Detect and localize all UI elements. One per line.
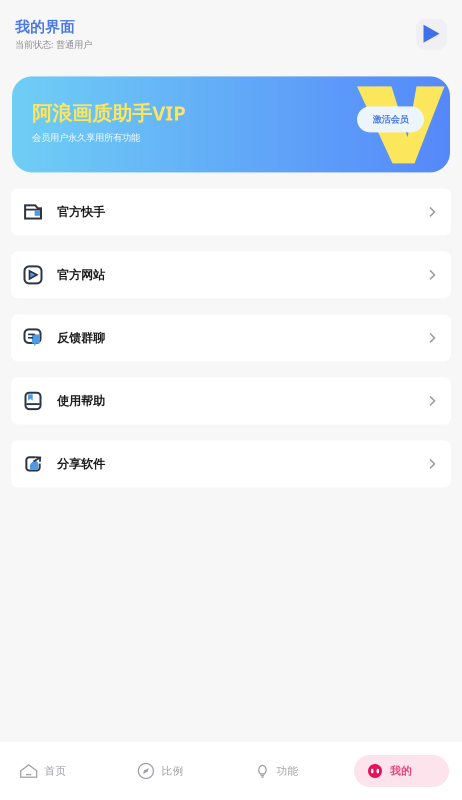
staticText: 阿浪画质助手VIP: [32, 99, 185, 126]
staticText: 反馈群聊: [57, 330, 105, 345]
staticText: 激活会员: [372, 114, 408, 125]
button[interactable]: 比例: [138, 742, 183, 800]
staticText: 分享软件: [57, 456, 105, 471]
staticText: 官方网站: [57, 267, 105, 282]
button[interactable]: 官方快手: [11, 188, 451, 235]
button[interactable]: 反馈群聊: [11, 314, 451, 361]
staticText: 当前状态: 普通用户: [15, 38, 92, 50]
button[interactable]: 分享软件: [11, 440, 451, 487]
button[interactable]: Send: [416, 19, 447, 50]
button[interactable]: 我的: [354, 755, 449, 787]
button[interactable]: 官方网站: [11, 251, 451, 298]
staticText: 首页: [44, 764, 66, 777]
button[interactable]: 首页: [20, 742, 66, 800]
staticText: 我的: [390, 764, 412, 777]
button[interactable]: 使用帮助: [11, 377, 451, 424]
button[interactable]: 功能: [256, 742, 298, 800]
staticText: 我的界面: [15, 18, 75, 36]
staticText: 比例: [161, 764, 183, 777]
staticText: 使用帮助: [57, 393, 105, 408]
staticText: 会员用户永久享用所有功能: [32, 132, 140, 143]
button[interactable]: 激活会员: [357, 106, 424, 132]
staticText: 官方快手: [57, 204, 105, 219]
staticText: 功能: [276, 764, 298, 777]
